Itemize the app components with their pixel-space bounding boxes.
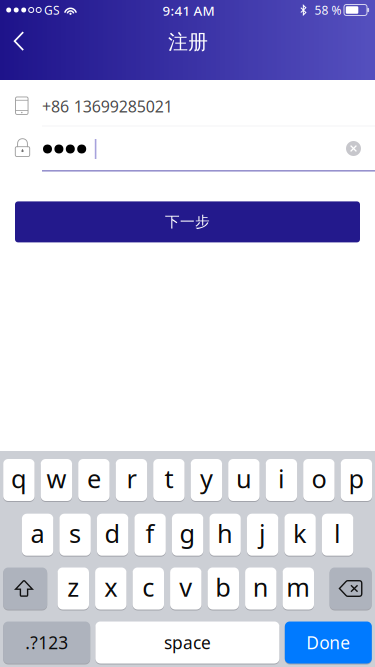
staticText: u xyxy=(236,462,252,495)
staticText: w xyxy=(46,462,66,495)
staticText: x xyxy=(104,570,117,604)
button[interactable]: space xyxy=(95,621,279,664)
button[interactable]: k xyxy=(284,513,316,556)
staticText: space xyxy=(164,631,211,654)
button[interactable]: f xyxy=(134,513,166,556)
staticText: v xyxy=(179,570,192,604)
staticText: s xyxy=(69,516,81,550)
staticText: q xyxy=(11,462,27,495)
button[interactable]: m xyxy=(283,567,314,610)
staticText: b xyxy=(215,570,231,604)
button[interactable]: Done xyxy=(285,621,372,664)
button[interactable]: g xyxy=(172,513,203,556)
staticText: c xyxy=(142,570,154,604)
button[interactable]: Shift xyxy=(3,567,47,610)
button[interactable]: o xyxy=(303,458,335,501)
button[interactable]: u xyxy=(228,458,260,501)
staticText: m xyxy=(286,570,310,604)
staticText: 13699285021 xyxy=(74,96,173,117)
staticText: a xyxy=(31,516,45,550)
staticText: t xyxy=(164,462,173,495)
staticText: i xyxy=(278,462,285,495)
staticText: h xyxy=(217,516,233,550)
staticText: 58 % xyxy=(314,2,341,18)
button[interactable]: e xyxy=(78,458,110,501)
staticText: g xyxy=(180,516,196,550)
button[interactable]: p xyxy=(341,458,372,501)
staticText: 9:41 AM xyxy=(162,2,214,19)
button[interactable]: l xyxy=(322,513,353,556)
button[interactable]: b xyxy=(208,567,239,610)
button[interactable]: w xyxy=(41,458,72,501)
button[interactable]: r xyxy=(116,458,147,501)
staticText: 注册 xyxy=(168,30,208,54)
button[interactable]: Delete xyxy=(330,567,372,610)
button[interactable]: Clear password xyxy=(340,135,366,161)
staticText: Done xyxy=(306,631,350,654)
staticText: 下一步 xyxy=(165,213,210,231)
staticText: GS xyxy=(44,2,60,18)
button[interactable]: q xyxy=(3,458,35,501)
staticText: r xyxy=(126,462,136,495)
staticText: f xyxy=(146,516,155,550)
staticText: o xyxy=(311,462,326,495)
button[interactable]: t xyxy=(153,458,185,501)
button[interactable]: c xyxy=(133,567,164,610)
button[interactable]: v xyxy=(170,567,201,610)
staticText: n xyxy=(253,570,269,604)
button[interactable]: .?123 xyxy=(3,621,90,664)
staticText: e xyxy=(87,462,101,495)
button[interactable]: z xyxy=(58,567,89,610)
button[interactable]: y xyxy=(191,458,222,501)
button[interactable]: x xyxy=(95,567,126,610)
staticText: z xyxy=(67,570,79,604)
staticText: +86 xyxy=(42,96,69,117)
button[interactable]: h xyxy=(209,513,241,556)
button[interactable]: n xyxy=(245,567,276,610)
staticText: d xyxy=(105,516,121,550)
button[interactable]: i xyxy=(266,458,297,501)
staticText: j xyxy=(259,516,266,550)
staticText: l xyxy=(334,516,341,550)
button[interactable]: j xyxy=(247,513,278,556)
button[interactable]: a xyxy=(22,513,53,556)
button[interactable]: 下一步 xyxy=(15,201,360,242)
staticText: y xyxy=(200,462,213,495)
staticText: p xyxy=(348,462,364,495)
staticText: k xyxy=(293,516,307,550)
button[interactable]: Back xyxy=(0,19,40,63)
button[interactable]: d xyxy=(97,513,128,556)
button[interactable]: s xyxy=(59,513,91,556)
staticText: .?123 xyxy=(25,631,68,654)
